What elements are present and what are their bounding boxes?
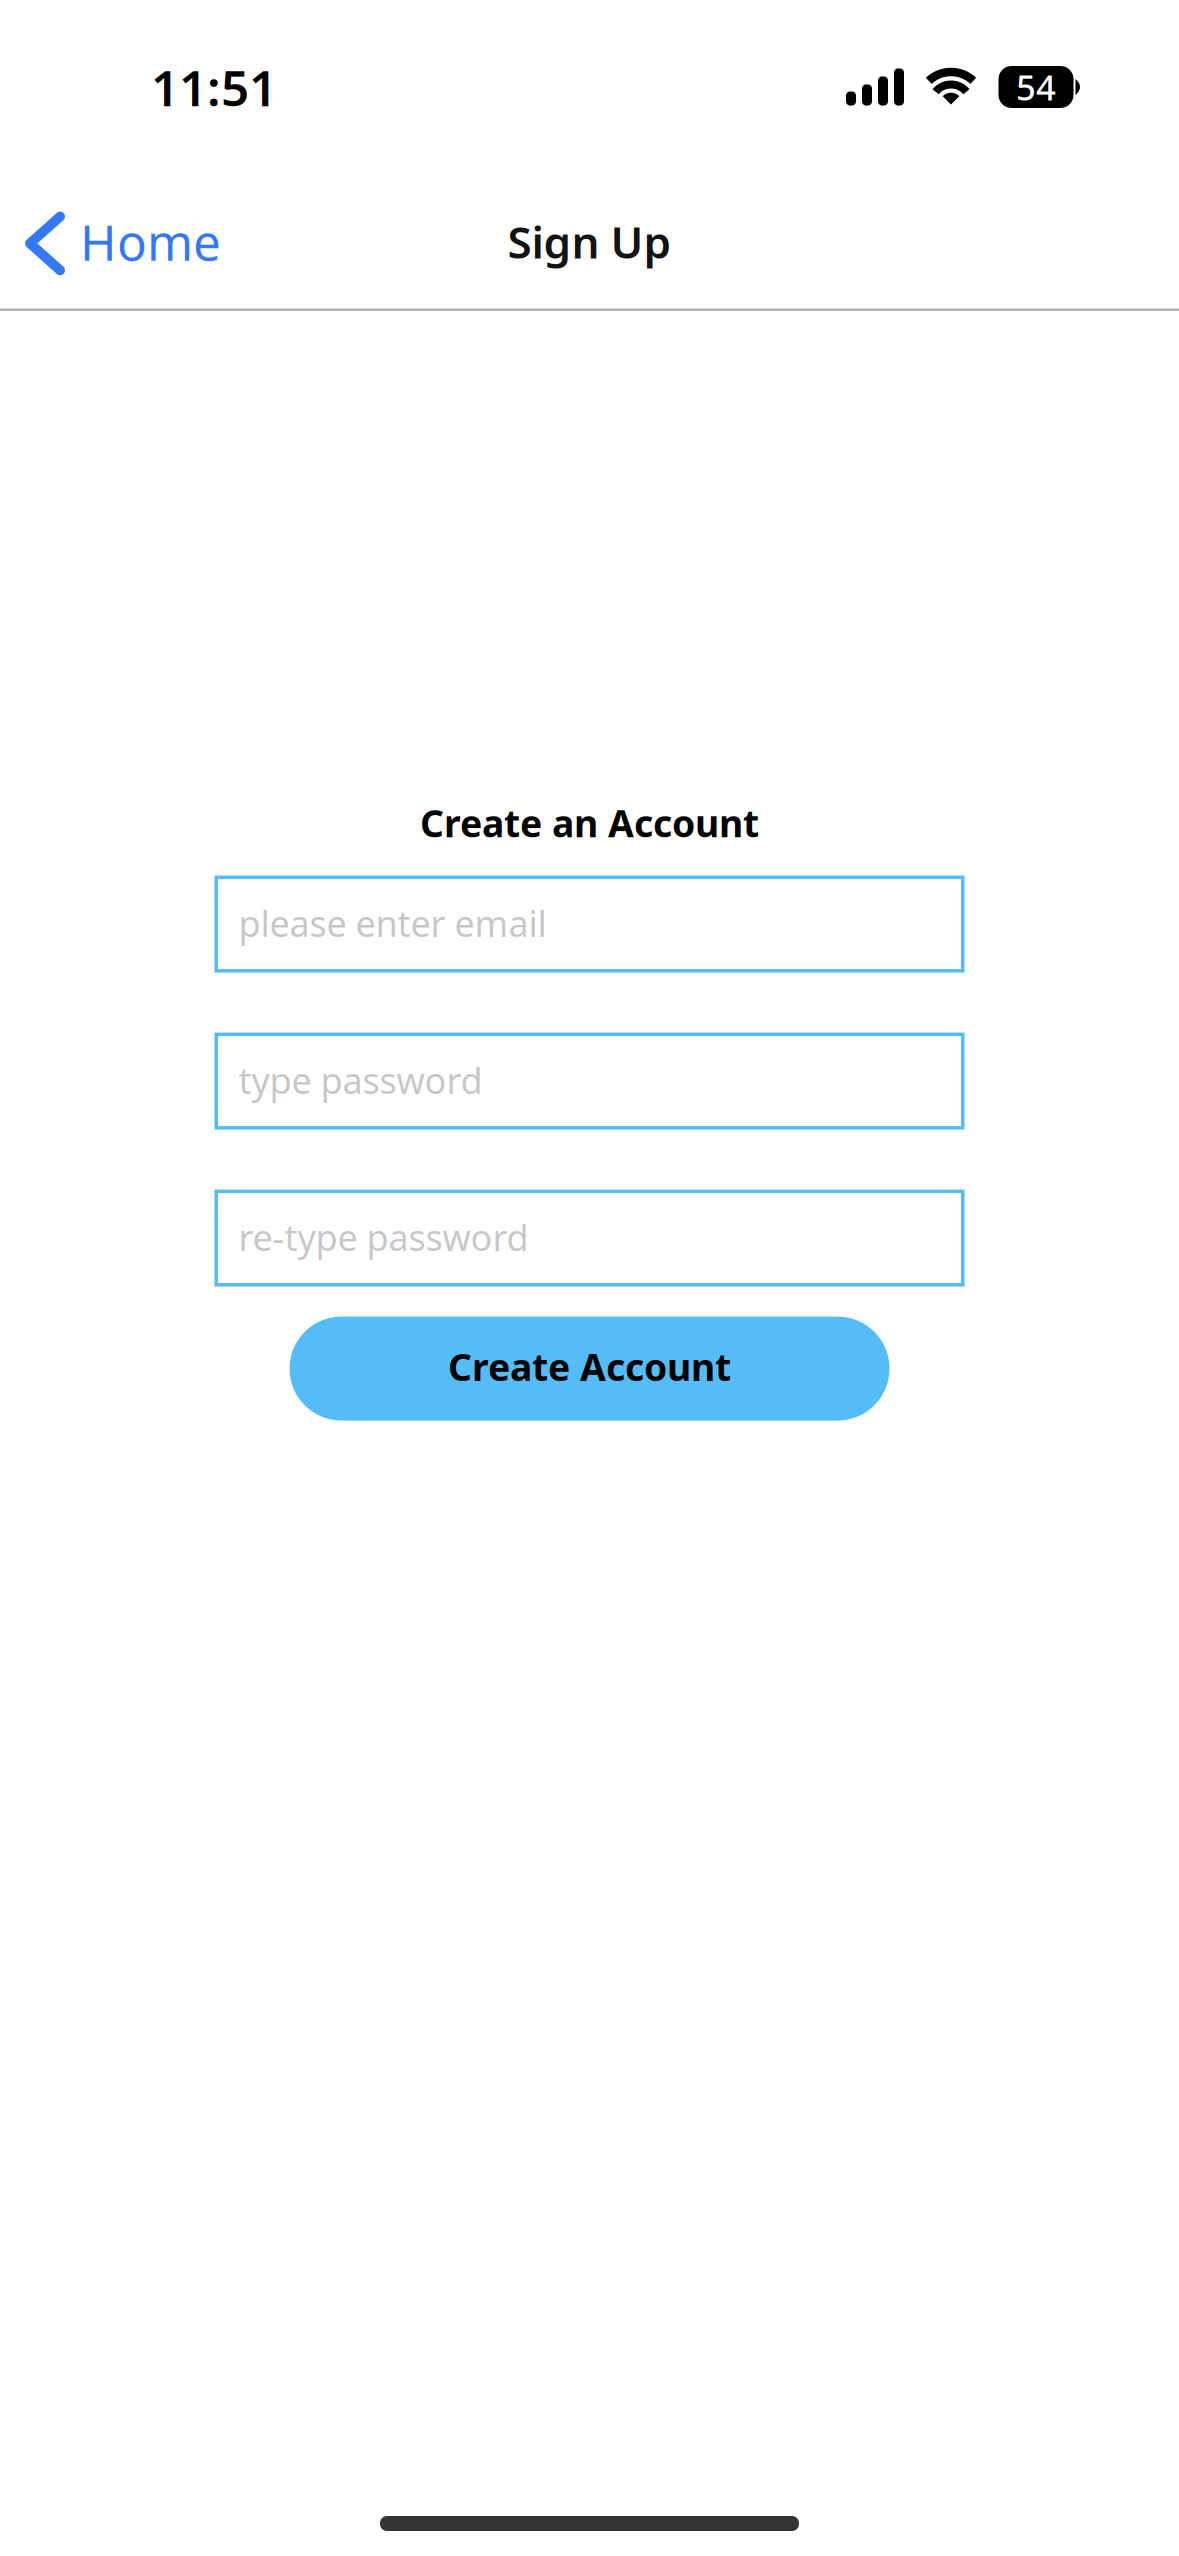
staticText: please enter email [238, 899, 546, 947]
staticText: Home [80, 209, 221, 274]
button[interactable]: Create Account [289, 1317, 889, 1421]
staticText: 11:51 [151, 54, 277, 120]
button[interactable]: type password [214, 1033, 964, 1130]
button[interactable]: re-type password [214, 1190, 964, 1287]
staticText: 54 [1016, 64, 1056, 110]
staticText: Sign Up [507, 212, 671, 271]
staticText: type password [238, 1056, 482, 1104]
staticText: re-type password [238, 1213, 528, 1261]
button[interactable]: please enter email [214, 876, 964, 973]
staticText: Create Account [448, 1342, 731, 1391]
staticText: Create an Account [420, 798, 759, 848]
button[interactable]: Home [0, 181, 300, 301]
